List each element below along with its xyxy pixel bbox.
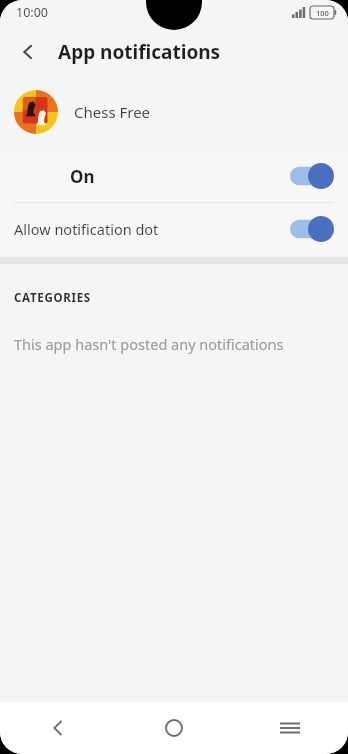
button[interactable]: On bbox=[0, 150, 348, 202]
staticText: 100 bbox=[316, 8, 329, 18]
staticText: App notifications bbox=[58, 39, 221, 65]
button[interactable]: Chess Free bbox=[0, 80, 348, 144]
staticText: CATEGORIES bbox=[14, 290, 91, 306]
staticText: Chess Free bbox=[74, 102, 151, 122]
button[interactable]: Back bbox=[8, 32, 48, 72]
button[interactable]: Toggle bbox=[290, 216, 334, 242]
button[interactable]: Allow notification dot bbox=[0, 203, 348, 255]
button[interactable]: Back bbox=[0, 702, 116, 754]
staticText: On bbox=[70, 165, 95, 188]
staticText: Allow notification dot bbox=[14, 219, 159, 239]
staticText: 10:00 bbox=[16, 4, 48, 21]
button[interactable]: Recents bbox=[232, 702, 348, 754]
staticText: This app hasn't posted any notifications bbox=[14, 334, 284, 354]
button[interactable]: Home bbox=[116, 702, 232, 754]
button[interactable]: Toggle bbox=[290, 163, 334, 189]
